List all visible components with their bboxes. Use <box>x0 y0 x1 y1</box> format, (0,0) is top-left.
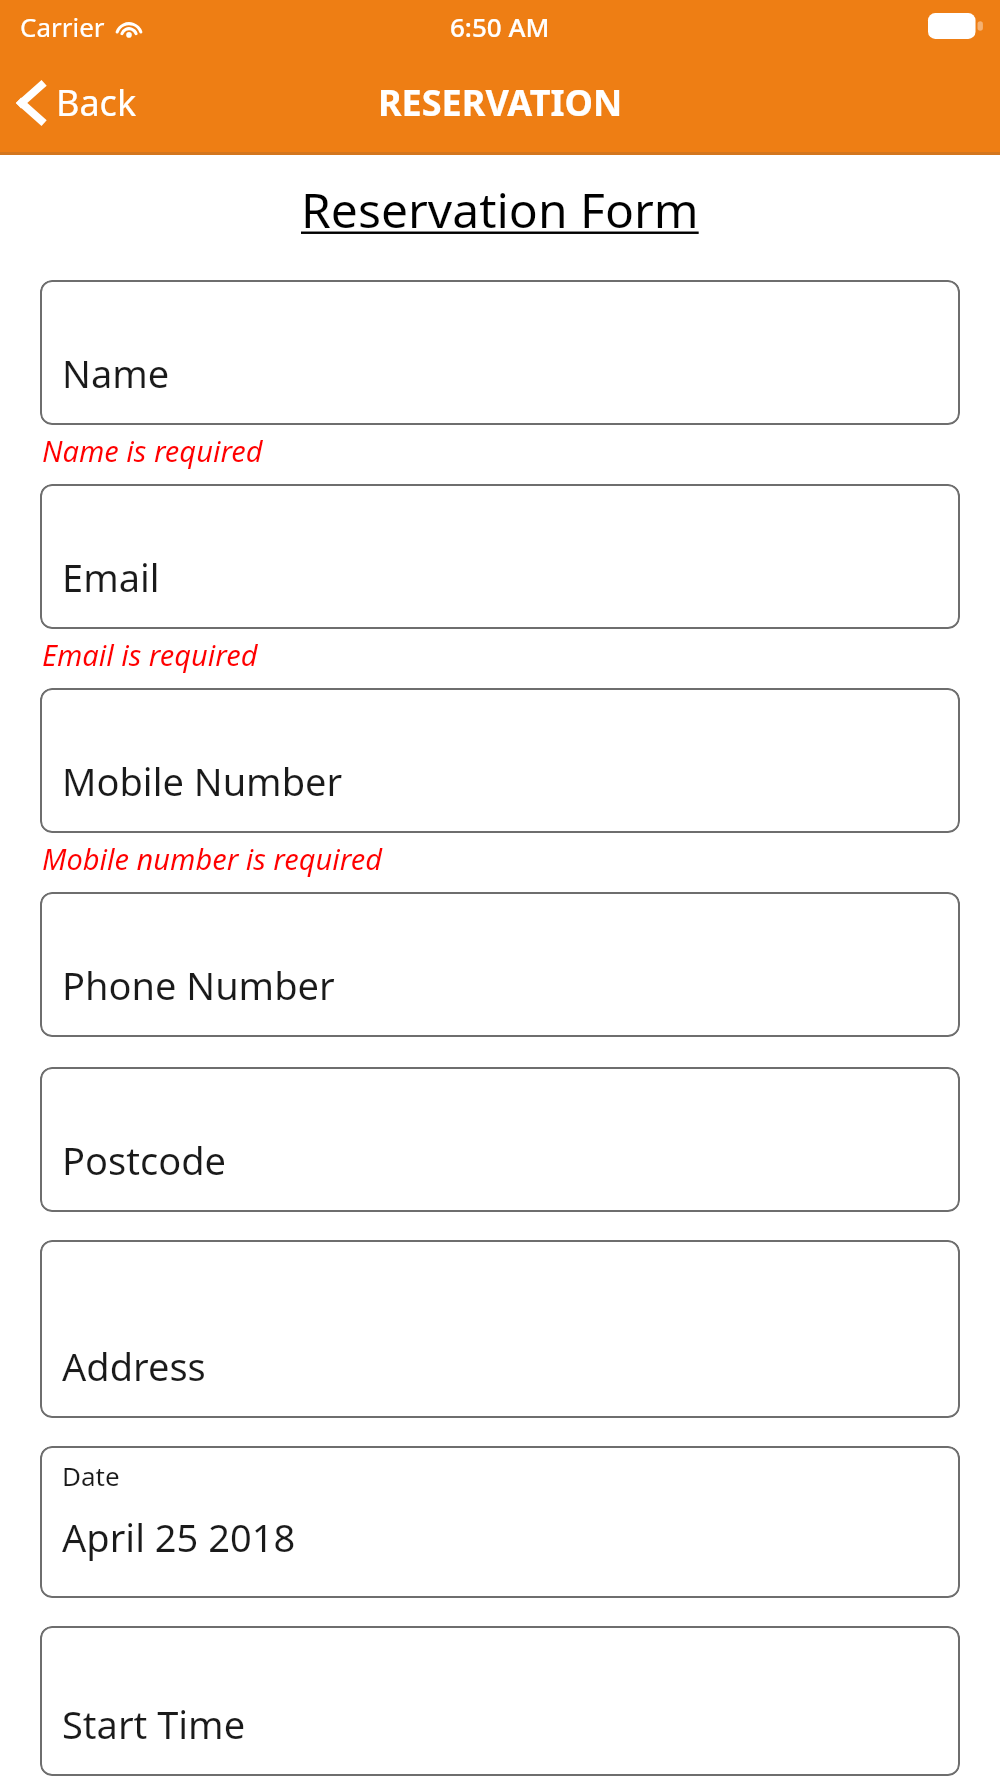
button[interactable]: Mobile Number <box>40 688 960 833</box>
staticText: Name <box>62 347 170 399</box>
staticText: Address <box>62 1340 206 1392</box>
staticText: Start Time <box>62 1698 246 1750</box>
staticText: Mobile Number <box>62 755 343 807</box>
staticText: 6:50 AM <box>450 9 550 44</box>
button[interactable]: Back <box>0 70 153 135</box>
staticText: April 25 2018 <box>62 1511 296 1563</box>
button[interactable]: Date <box>40 1446 960 1598</box>
button[interactable]: Name <box>40 280 960 425</box>
staticText: Name is required <box>42 431 263 470</box>
staticText: RESERVATION <box>378 78 623 127</box>
staticText: Email is required <box>42 635 258 674</box>
staticText: Email <box>62 551 160 603</box>
button[interactable]: Start Time <box>40 1626 960 1776</box>
staticText: Date <box>62 1458 120 1493</box>
staticText: Postcode <box>62 1134 226 1186</box>
staticText: Back <box>56 78 137 127</box>
staticText: Reservation Form <box>301 177 699 242</box>
staticText: Mobile number is required <box>42 839 383 878</box>
button[interactable]: Address <box>40 1240 960 1418</box>
staticText: Carrier <box>20 9 105 44</box>
staticText: Phone Number <box>62 959 335 1011</box>
button[interactable]: Email <box>40 484 960 629</box>
button[interactable]: Postcode <box>40 1067 960 1212</box>
button[interactable]: Phone Number <box>40 892 960 1037</box>
